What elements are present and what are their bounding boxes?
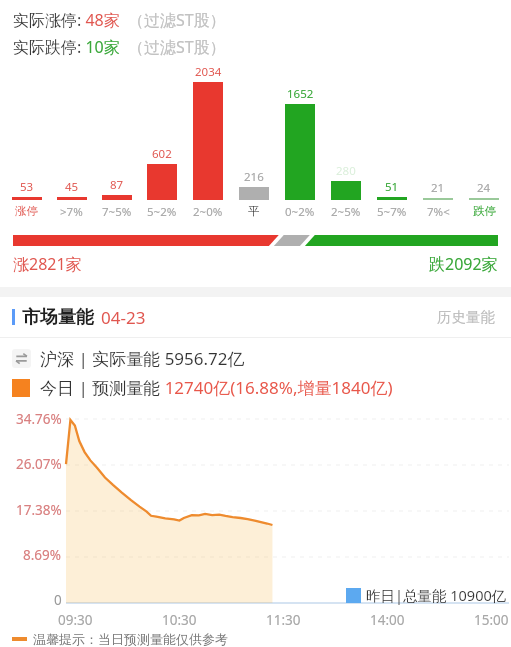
staticText: 21 xyxy=(431,180,445,196)
staticText: 5~2% xyxy=(147,204,177,220)
button[interactable]: 历史量能 xyxy=(433,304,499,330)
staticText: 09:30 xyxy=(58,611,93,629)
staticText: 昨日|总量能 10900亿 xyxy=(366,585,507,605)
staticText: 2~0% xyxy=(193,204,223,220)
staticText: 实际涨停: 48家 （过滤ST股） xyxy=(13,9,226,31)
staticText: 跌停 xyxy=(473,204,496,218)
staticText: 市场量能 xyxy=(22,306,94,329)
staticText: 14:00 xyxy=(370,611,405,629)
staticText: 45 xyxy=(65,179,79,195)
staticText: 04-23 xyxy=(101,306,146,329)
staticText: 平 xyxy=(248,204,260,218)
staticText: 280 xyxy=(336,163,356,179)
staticText: >7% xyxy=(60,204,83,220)
staticText: 实际跌停: 10家 （过滤ST股） xyxy=(13,36,226,58)
staticText: 8.69% xyxy=(23,546,62,564)
staticText: 今日 | 预测量能 12740亿(16.88%,增量1840亿) xyxy=(40,376,393,399)
staticText: 沪深 | 实际量能 5956.72亿 xyxy=(40,347,245,370)
staticText: 5~7% xyxy=(377,204,407,220)
staticText: 7~5% xyxy=(102,204,132,220)
staticText: 温馨提示：当日预测量能仅供参考 xyxy=(33,631,228,647)
staticText: 17.38% xyxy=(16,501,62,519)
staticText: 0 xyxy=(54,591,62,609)
staticText: 0~2% xyxy=(285,204,315,220)
staticText: 24 xyxy=(477,180,491,196)
staticText: 216 xyxy=(244,169,264,185)
staticText: 历史量能 xyxy=(437,308,495,326)
staticText: 2~5% xyxy=(331,204,361,220)
staticText: 1652 xyxy=(287,86,314,102)
staticText: 11:30 xyxy=(266,611,301,629)
staticText: 7%< xyxy=(427,204,450,220)
staticText: 34.76% xyxy=(16,410,62,428)
staticText: 602 xyxy=(152,146,172,162)
staticText: 87 xyxy=(110,177,124,193)
staticText: 53 xyxy=(20,179,34,195)
staticText: 26.07% xyxy=(16,455,62,473)
staticText: 15:00 xyxy=(474,611,509,629)
staticText: 跌2092家 xyxy=(429,253,498,275)
staticText: 51 xyxy=(385,179,399,195)
staticText: 涨停 xyxy=(15,204,38,218)
staticText: 10:30 xyxy=(162,611,197,629)
staticText: 2034 xyxy=(195,64,222,80)
staticText: 涨2821家 xyxy=(13,253,82,275)
